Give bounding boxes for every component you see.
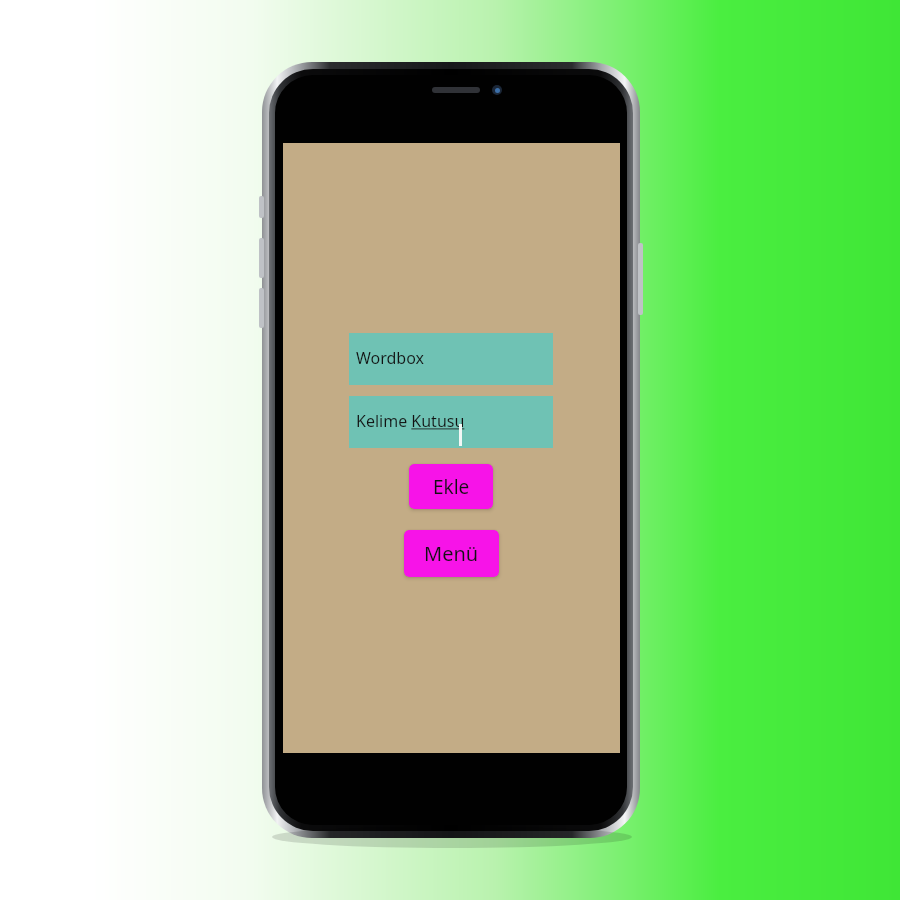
staticText: Ekle: [433, 474, 470, 500]
staticText: Kelime Kutusu: [356, 410, 465, 432]
button[interactable]: Wordbox: [349, 333, 553, 385]
staticText: Wordbox: [356, 347, 425, 369]
button[interactable]: Menü: [404, 530, 499, 577]
button[interactable]: Kelime Kutusu: [349, 396, 553, 448]
other: Power: [638, 243, 643, 315]
other: Volume down: [259, 288, 264, 328]
button[interactable]: Ekle: [409, 464, 493, 509]
staticText: Menü: [424, 540, 479, 567]
other: Mute switch: [259, 196, 264, 218]
other: Volume up: [259, 238, 264, 278]
